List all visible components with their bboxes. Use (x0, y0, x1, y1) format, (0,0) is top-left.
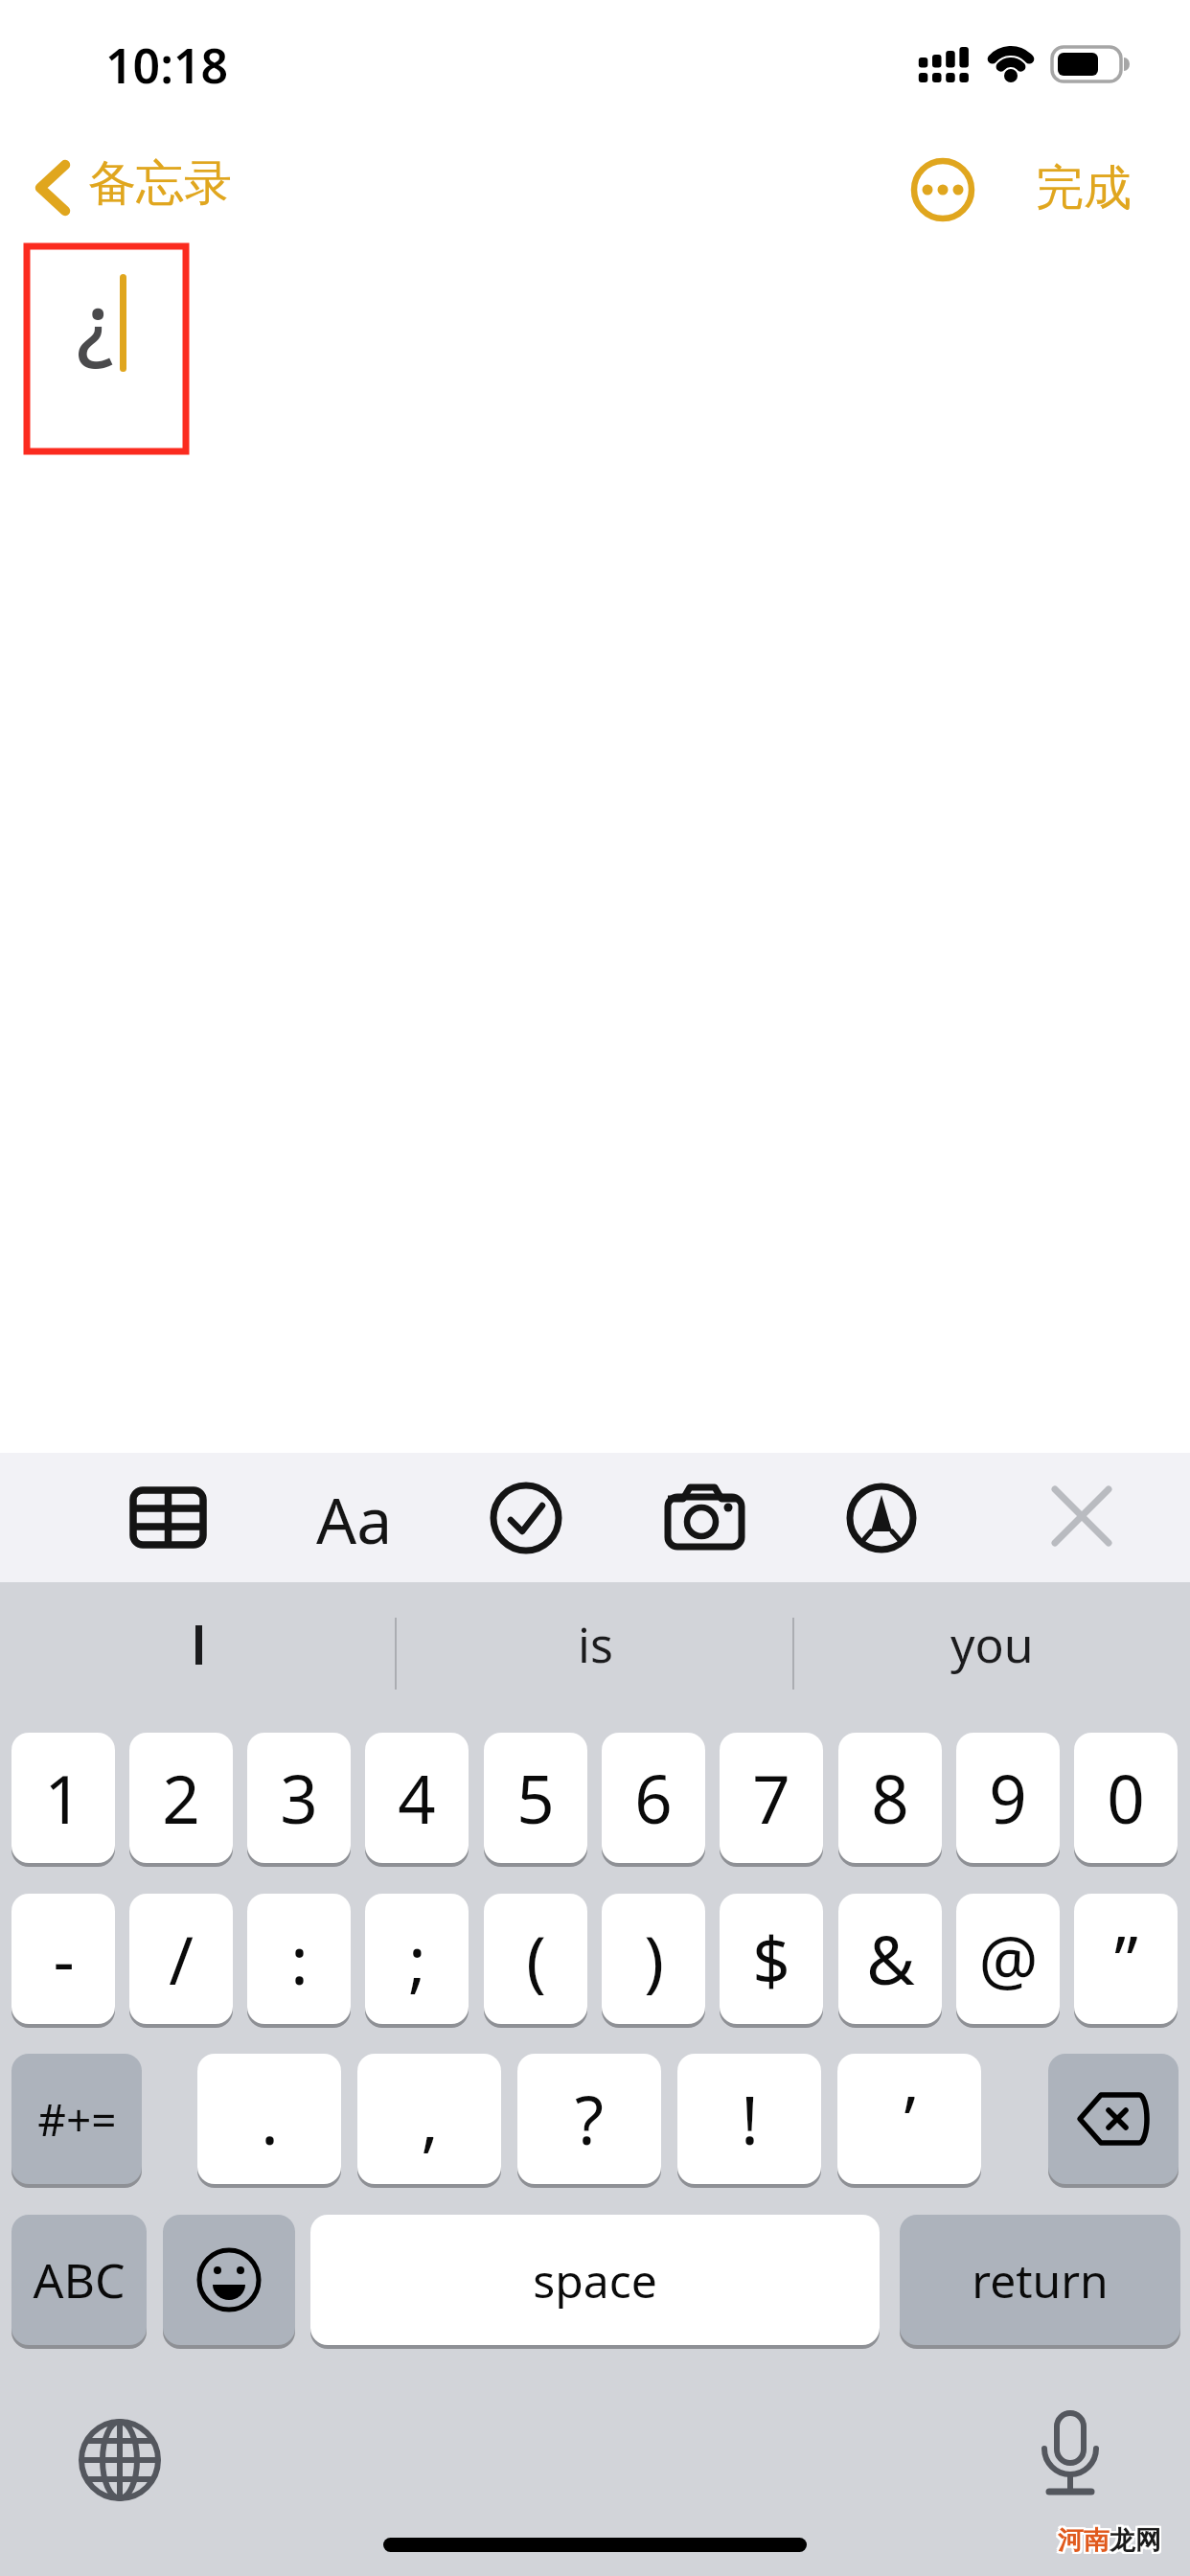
button[interactable]: return (900, 2215, 1180, 2345)
staticText: @ (978, 1914, 1039, 2004)
staticText: 7 (752, 1753, 790, 1843)
button[interactable] (843, 1480, 920, 1556)
staticText: 9 (989, 1753, 1027, 1843)
staticText: ? (575, 2074, 604, 2164)
staticText: / (169, 1914, 194, 2004)
staticText: 3 (280, 1753, 318, 1843)
button[interactable]: 4 (365, 1733, 469, 1863)
staticText: 龙网 (1110, 2524, 1161, 2557)
button[interactable]: 3 (247, 1733, 351, 1863)
button[interactable] (1048, 2054, 1179, 2184)
button[interactable]: . (197, 2054, 341, 2184)
button[interactable]: , (357, 2054, 501, 2184)
button[interactable]: 完成 (1021, 149, 1146, 226)
staticText: $ (752, 1914, 790, 2004)
staticText: 备忘录 (88, 153, 232, 214)
button[interactable]: - (11, 1894, 115, 2024)
staticText: . (261, 2074, 279, 2164)
button[interactable]: 备忘录 (19, 144, 268, 230)
staticText: ” (1114, 1914, 1138, 2004)
button[interactable] (662, 1476, 748, 1552)
button[interactable]: 0 (1074, 1733, 1178, 1863)
staticText: : (290, 1914, 309, 2004)
button[interactable]: 8 (838, 1733, 942, 1863)
button[interactable] (126, 1483, 212, 1554)
staticText: you (950, 1612, 1034, 1677)
staticText: 河南龙网 (1060, 2524, 1163, 2557)
staticText: 1 (44, 1753, 82, 1843)
button[interactable]: 9 (956, 1733, 1060, 1863)
button[interactable]: 7 (720, 1733, 823, 1863)
button[interactable] (910, 157, 975, 222)
staticText: 10:18 (105, 33, 229, 98)
staticText: 5 (516, 1753, 555, 1843)
staticText: 河南龙网 (1056, 2524, 1159, 2557)
staticText: ABC (33, 2247, 126, 2312)
button[interactable] (77, 2417, 163, 2503)
staticText: ; (408, 1914, 426, 2004)
staticText: Aa (316, 1476, 393, 1560)
button[interactable]: ( (484, 1894, 587, 2024)
staticText: ! (741, 2074, 759, 2164)
staticText: 8 (871, 1753, 909, 1843)
staticText: ) (644, 1914, 664, 2004)
staticText: 河南龙网 (1060, 2522, 1163, 2555)
button[interactable]: space (310, 2215, 880, 2345)
staticText: ’ (904, 2074, 916, 2164)
staticText: 河南龙网 (1060, 2526, 1163, 2559)
button[interactable]: & (838, 1894, 942, 2024)
button[interactable] (488, 1480, 564, 1556)
staticText: 河南龙网 (1056, 2526, 1159, 2559)
button[interactable]: / (129, 1894, 233, 2024)
staticText: , (421, 2074, 439, 2164)
button[interactable]: 2 (129, 1733, 233, 1863)
button[interactable]: you (793, 1593, 1190, 1696)
button[interactable] (0, 1593, 397, 1696)
staticText: & (866, 1914, 915, 2004)
button[interactable]: ) (602, 1894, 705, 2024)
staticText: 河南 (1058, 2524, 1110, 2557)
staticText: 河南龙网 (1058, 2526, 1161, 2559)
staticText: 河南龙网 (1058, 2522, 1161, 2555)
button[interactable]: : (247, 1894, 351, 2024)
button[interactable] (1027, 2407, 1113, 2503)
staticText: - (53, 1914, 75, 2004)
button[interactable]: ? (517, 2054, 661, 2184)
staticText: ¿ (77, 265, 114, 378)
staticText: is (578, 1612, 613, 1677)
button[interactable]: ; (365, 1894, 469, 2024)
button[interactable]: is (397, 1593, 793, 1696)
button[interactable]: #+= (11, 2054, 142, 2184)
button[interactable] (1052, 1486, 1111, 1546)
button[interactable]: 1 (11, 1733, 115, 1863)
button[interactable]: ” (1074, 1894, 1178, 2024)
staticText: #+= (37, 2089, 117, 2150)
staticText: space (533, 2249, 657, 2311)
button[interactable]: @ (956, 1894, 1060, 2024)
staticText: 0 (1107, 1753, 1145, 1843)
staticText: ( (526, 1914, 546, 2004)
staticText: return (972, 2249, 1109, 2311)
staticText: 2 (162, 1753, 200, 1843)
staticText: 4 (398, 1753, 436, 1843)
staticText: 河南龙网 (1056, 2522, 1159, 2555)
button[interactable]: $ (720, 1894, 823, 2024)
button[interactable]: ! (677, 2054, 821, 2184)
button[interactable] (163, 2215, 295, 2345)
button[interactable]: ’ (837, 2054, 981, 2184)
button[interactable]: Aa (307, 1476, 402, 1560)
button[interactable]: ABC (11, 2215, 147, 2345)
staticText: 6 (634, 1753, 673, 1843)
button[interactable]: 5 (484, 1733, 587, 1863)
staticText: 完成 (1036, 158, 1132, 218)
button[interactable]: 6 (602, 1733, 705, 1863)
